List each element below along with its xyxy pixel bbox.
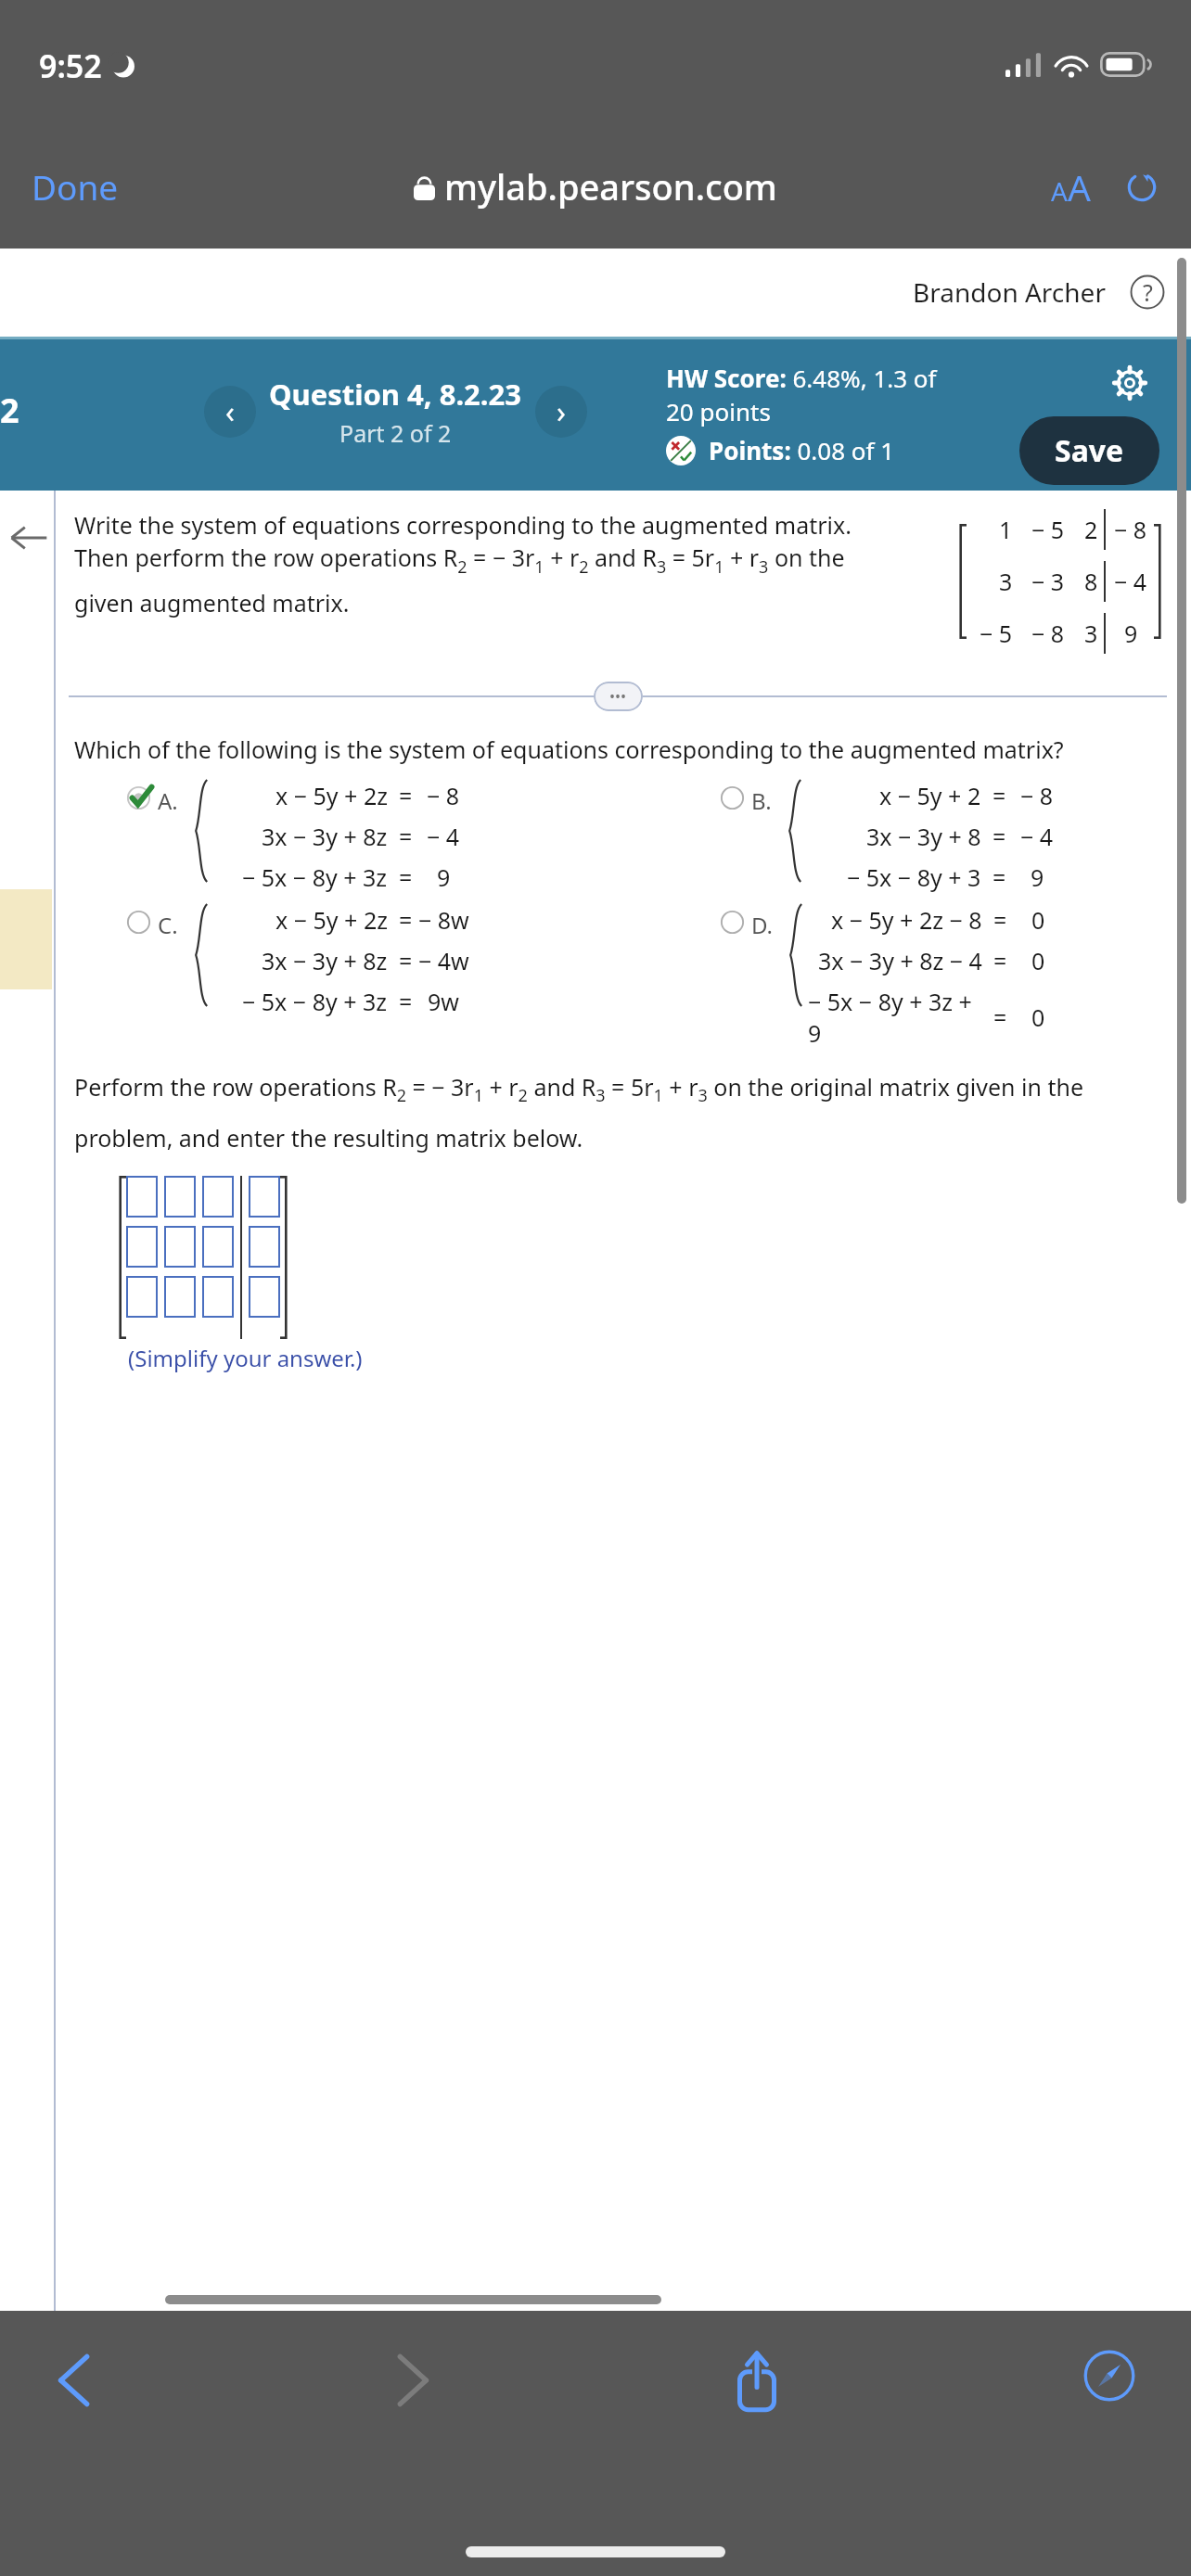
button[interactable]: Matrix entry: [249, 1226, 280, 1268]
staticText: mylab.pearson.com: [444, 162, 777, 210]
button[interactable]: mylab.pearson.com: [406, 155, 785, 218]
button[interactable]: Reload: [1115, 160, 1169, 214]
staticText: x − 5y + 2z − 8: [831, 904, 982, 936]
button[interactable]: A.: [56, 778, 649, 893]
staticText: Which of the following is the system of …: [74, 733, 1064, 765]
staticText: =: [399, 780, 413, 811]
staticText: =: [399, 945, 413, 976]
staticText: (Simplify your answer.): [128, 1343, 363, 1373]
button[interactable]: Brandon Archer: [909, 271, 1109, 313]
button[interactable]: Matrix entry: [126, 1276, 158, 1318]
staticText: − 3: [1031, 566, 1065, 597]
staticText: Perform the row operations R2 = − 3r1 + …: [74, 1071, 1167, 1154]
staticText: B.: [751, 785, 772, 816]
button[interactable]: Previous question: [204, 386, 256, 438]
staticText: A.: [158, 785, 178, 816]
staticText: x − 5y + 2z: [275, 780, 388, 811]
button[interactable]: Matrix entry: [126, 1226, 158, 1268]
staticText: 3x − 3y + 8z: [262, 821, 388, 852]
staticText: − 5x − 8y + 3z + 9: [808, 986, 982, 1049]
staticText: 3x − 3y + 8: [866, 821, 981, 852]
staticText: =: [399, 904, 413, 936]
staticText: − 8: [1114, 514, 1147, 545]
staticText: − 5x − 8y + 3z: [242, 861, 388, 893]
staticText: − 5: [980, 618, 1013, 649]
staticText: Points: 0.08 of 1: [709, 434, 895, 466]
staticText: ›: [557, 391, 566, 432]
staticText: 0: [1031, 904, 1045, 936]
staticText: 9: [1031, 861, 1044, 893]
staticText: − 4: [427, 821, 460, 852]
staticText: 9: [437, 861, 451, 893]
button[interactable]: Open in Safari: [1072, 2339, 1146, 2413]
button[interactable]: Matrix entry: [249, 1276, 280, 1318]
button[interactable]: Text size: [1042, 153, 1100, 221]
staticText: − 4w: [418, 945, 469, 976]
button[interactable]: D.: [649, 902, 1191, 1049]
button[interactable]: Matrix entry: [164, 1276, 196, 1318]
staticText: 0: [1031, 1001, 1045, 1033]
staticText: =: [992, 861, 1006, 893]
staticText: =: [993, 1001, 1007, 1033]
staticText: ‹: [225, 391, 235, 432]
staticText: − 5x − 8y + 3: [847, 861, 981, 893]
button[interactable]: Share: [721, 2339, 793, 2424]
button[interactable]: Matrix entry: [249, 1176, 280, 1218]
staticText: 1: [999, 514, 1013, 545]
button[interactable]: Matrix entry: [126, 1176, 158, 1218]
staticText: 0: [1031, 945, 1045, 976]
staticText: Question 4, 8.2.23: [269, 375, 522, 414]
staticText: 9:52: [39, 45, 102, 87]
staticText: =: [399, 986, 413, 1017]
staticText: − 5x − 8y + 3z: [242, 986, 388, 1017]
staticText: =: [399, 821, 413, 852]
button[interactable]: Done: [22, 154, 128, 219]
staticText: 9w: [428, 986, 459, 1017]
staticText: 3: [1084, 618, 1098, 649]
staticText: 3x − 3y + 8z − 4: [818, 945, 982, 976]
staticText: •••: [609, 686, 627, 707]
staticText: AA: [1051, 162, 1091, 211]
staticText: 2: [1084, 514, 1098, 545]
button[interactable]: Back: [45, 2339, 104, 2422]
staticText: x − 5y + 2: [879, 780, 981, 811]
button[interactable]: Matrix entry: [164, 1226, 196, 1268]
staticText: x − 5y + 2z: [275, 904, 388, 936]
button[interactable]: Matrix entry: [202, 1276, 234, 1318]
staticText: − 8: [1031, 618, 1065, 649]
button[interactable]: Save: [1019, 416, 1159, 485]
staticText: Write the system of equations correspond…: [74, 509, 890, 619]
staticText: =: [993, 904, 1007, 936]
staticText: Done: [32, 163, 119, 210]
staticText: 9: [1124, 618, 1138, 649]
staticText: − 5: [1031, 514, 1065, 545]
button[interactable]: Help: [1128, 273, 1167, 312]
button[interactable]: Matrix entry: [164, 1176, 196, 1218]
staticText: − 8: [1020, 780, 1054, 811]
button[interactable]: Forward: [383, 2339, 442, 2422]
staticText: =: [399, 861, 413, 893]
staticText: 8: [1084, 566, 1098, 597]
button[interactable]: Settings: [1108, 361, 1152, 405]
staticText: ?: [1143, 276, 1153, 308]
staticText: − 8: [427, 780, 460, 811]
button[interactable]: Next question: [535, 386, 587, 438]
staticText: − 4: [1020, 821, 1054, 852]
staticText: =: [992, 780, 1006, 811]
staticText: =: [992, 821, 1006, 852]
button[interactable]: More: [594, 682, 643, 711]
staticText: 2: [0, 388, 19, 433]
button[interactable]: B.: [649, 778, 1191, 893]
staticText: C.: [158, 910, 178, 940]
staticText: 3x − 3y + 8z: [262, 945, 388, 976]
staticText: Save: [1055, 430, 1124, 471]
button[interactable]: Back: [6, 515, 52, 561]
button[interactable]: Matrix entry: [202, 1176, 234, 1218]
button[interactable]: Matrix entry: [202, 1226, 234, 1268]
button[interactable]: C.: [56, 902, 649, 1017]
staticText: =: [993, 945, 1007, 976]
staticText: − 4: [1114, 566, 1147, 597]
staticText: 3: [999, 566, 1013, 597]
staticText: − 8w: [418, 904, 469, 936]
staticText: Brandon Archer: [913, 274, 1106, 310]
